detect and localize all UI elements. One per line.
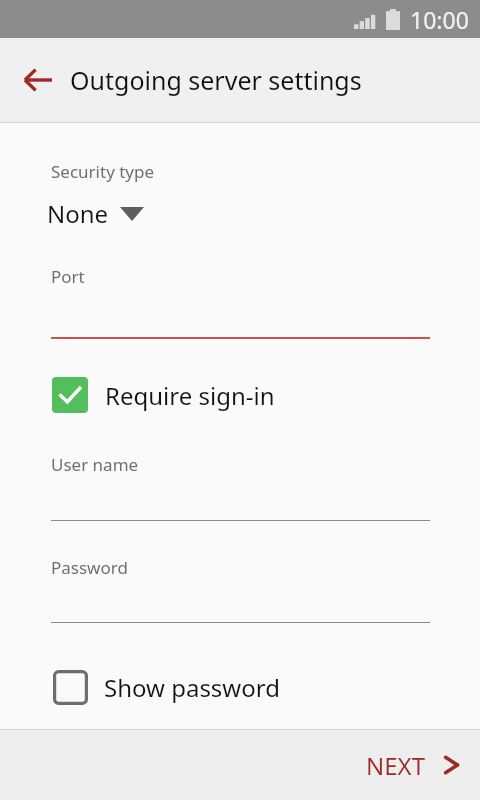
- staticText: Security type: [51, 160, 155, 183]
- staticText: None: [47, 197, 109, 230]
- staticText: Outgoing server settings: [70, 63, 362, 97]
- staticText: Show password: [104, 671, 280, 704]
- staticText: Require sign-in: [105, 379, 275, 412]
- button[interactable]: None: [47, 197, 144, 230]
- staticText: User name: [51, 453, 139, 476]
- button[interactable]: Require sign-in: [44, 369, 275, 421]
- staticText: Password: [51, 556, 128, 579]
- button[interactable]: NEXT: [340, 730, 480, 800]
- staticText: NEXT: [366, 749, 425, 782]
- staticText: 10:00: [410, 4, 469, 35]
- button[interactable]: Back: [12, 54, 64, 106]
- staticText: Port: [51, 265, 85, 288]
- button[interactable]: Show password: [44, 661, 280, 713]
